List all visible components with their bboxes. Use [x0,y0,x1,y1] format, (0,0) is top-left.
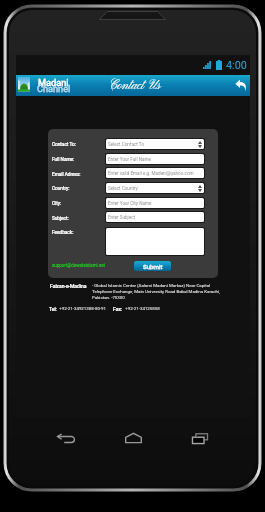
staticText: Enter valid Email e.g. Madani@yahoo.com [108,171,194,176]
staticText: Select Country [108,186,138,191]
staticText: Email Adress: [52,172,81,178]
button[interactable]: Recent apps [183,426,217,450]
staticText: Feedback: [52,230,74,236]
staticText: Contact To: [52,142,76,148]
staticText: Full Name: [52,157,75,163]
button[interactable]: Enter Your City Name [106,198,204,208]
button[interactable]: Submit [134,261,171,271]
button[interactable]: Back [49,426,83,450]
staticText: +92-21-34921388-80-91 [57,306,107,311]
staticText: 4:00 [226,59,247,72]
button[interactable]: Select Contact To [106,139,204,149]
button[interactable]: Enter Your Full Name [106,154,204,164]
button[interactable]: Home [116,426,150,450]
staticText: Pakistan. -75300 [92,295,125,300]
staticText: Enter Your City Name [108,201,152,206]
button[interactable]: Back [235,79,247,92]
staticText: Channel [37,83,71,94]
staticText: +92-21-34125858 [123,306,160,311]
button[interactable]: Enter valid Email e.g. Madani@yahoo.com [106,168,204,178]
button[interactable]: Feedback [106,228,204,255]
staticText: Faizan-e-Madina [50,283,87,289]
staticText: Subject: [52,216,69,222]
button[interactable]: Select Country [106,183,204,193]
staticText: Country: [52,186,70,192]
staticText: Tel: [49,306,57,312]
staticText: Madani [38,77,69,88]
staticText: City: [52,201,62,207]
staticText: Fax: [113,306,123,312]
staticText: Enter Subject [108,215,136,220]
staticText: Contact Us [109,78,161,94]
staticText: - Global Islamic Center (Aalami Madani M… [92,283,211,288]
staticText: Select Contact To [108,142,145,147]
button[interactable]: Enter Subject [106,212,204,222]
staticText: Submit [143,263,163,270]
button[interactable]: support@dawateislami.net [52,263,106,268]
staticText: Enter Your Full Name [108,157,151,162]
staticText: Telephone Exchange, Main University Road… [92,289,220,294]
button[interactable]: Madani Channel [18,77,30,93]
